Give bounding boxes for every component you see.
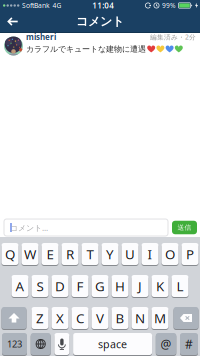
staticText: Z <box>36 309 44 327</box>
staticText: misheri <box>26 32 56 42</box>
button[interactable]: P <box>181 243 198 266</box>
button[interactable]: space <box>73 333 152 356</box>
staticText: SoftBank <box>22 1 50 10</box>
staticText: J <box>138 277 142 295</box>
staticText: X <box>56 309 64 327</box>
button[interactable]: J <box>131 275 148 298</box>
button[interactable]: A <box>11 275 28 298</box>
staticText: Q <box>5 245 15 263</box>
button[interactable]: # <box>180 333 198 356</box>
staticText: F <box>76 277 83 295</box>
staticText: 99% <box>162 1 176 10</box>
staticText: 送信 <box>177 223 191 232</box>
button[interactable]: B <box>111 307 128 330</box>
staticText: カラフルでキュートな建物に遭遇 <box>26 44 146 54</box>
button[interactable]: 送信 <box>172 221 197 234</box>
staticText: N <box>135 309 145 327</box>
button[interactable]: U <box>121 243 138 266</box>
button[interactable]: F <box>71 275 88 298</box>
button[interactable]: misheri のプロフィール <box>4 36 23 55</box>
staticText: R <box>66 245 74 263</box>
button[interactable]: misheri <box>26 32 56 42</box>
staticText: K <box>156 277 164 295</box>
staticText: 編集済み・2分 <box>150 33 196 41</box>
button[interactable]: H <box>111 275 128 298</box>
button[interactable]: E <box>41 243 58 266</box>
button[interactable]: R <box>61 243 78 266</box>
button[interactable]: コメントを入力 <box>4 219 168 236</box>
staticText: space <box>98 337 127 351</box>
staticText: コメント <box>76 14 124 29</box>
button[interactable]: L <box>171 275 188 298</box>
staticText: 11:04 <box>92 0 114 11</box>
staticText: P <box>186 245 194 263</box>
button[interactable]: 戻る <box>1 12 25 30</box>
staticText: 4G <box>52 1 61 10</box>
button[interactable]: 言語切替 <box>31 333 51 356</box>
button[interactable]: 音声入力 <box>54 333 69 356</box>
button[interactable]: S <box>31 275 48 298</box>
staticText: I <box>147 245 152 263</box>
staticText: W <box>24 245 36 263</box>
staticText: # <box>185 336 193 352</box>
staticText: T <box>86 245 93 263</box>
button[interactable]: T <box>81 243 98 266</box>
staticText: U <box>125 245 135 263</box>
staticText: H <box>115 277 125 295</box>
button[interactable]: K <box>151 275 168 298</box>
staticText: E <box>46 245 53 263</box>
button[interactable]: X <box>51 307 68 330</box>
staticText: コメント... <box>10 222 48 233</box>
button[interactable]: @ <box>156 333 176 356</box>
button[interactable]: V <box>91 307 108 330</box>
staticText: O <box>165 245 175 263</box>
staticText: M <box>154 309 166 327</box>
staticText: C <box>76 309 84 327</box>
button[interactable]: M <box>151 307 168 330</box>
staticText: V <box>96 309 104 327</box>
button[interactable]: Z <box>31 307 48 330</box>
button[interactable]: Q <box>1 243 18 266</box>
button[interactable]: 削除 <box>173 307 198 330</box>
staticText: 123 <box>7 338 22 350</box>
staticText: D <box>55 277 65 295</box>
staticText: L <box>176 277 183 295</box>
staticText: A <box>15 277 24 295</box>
staticText: B <box>115 309 124 327</box>
button[interactable]: G <box>91 275 108 298</box>
staticText: @ <box>161 336 172 352</box>
button[interactable]: I <box>141 243 158 266</box>
button[interactable]: D <box>51 275 68 298</box>
staticText: G <box>95 277 105 295</box>
button[interactable]: Y <box>101 243 118 266</box>
button[interactable]: 123 <box>2 333 27 356</box>
button[interactable]: O <box>161 243 178 266</box>
staticText: Y <box>106 245 114 263</box>
button[interactable]: N <box>131 307 148 330</box>
button[interactable]: シフト <box>1 307 26 330</box>
button[interactable]: C <box>71 307 88 330</box>
staticText: S <box>36 277 43 295</box>
button[interactable]: W <box>21 243 38 266</box>
